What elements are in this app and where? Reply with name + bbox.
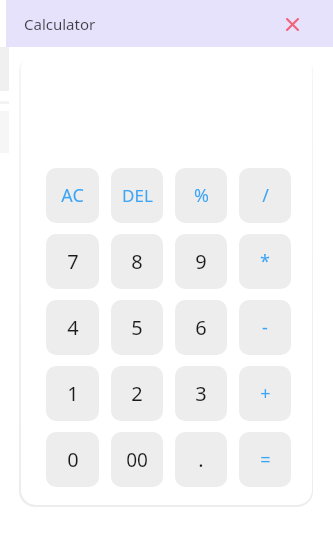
staticText: . (198, 446, 204, 473)
button[interactable]: . (175, 432, 227, 487)
staticText: = (260, 447, 271, 472)
button[interactable]: DEL (111, 168, 163, 223)
button[interactable]: 1 (46, 366, 99, 421)
button[interactable]: 6 (175, 300, 227, 355)
staticText: 00 (126, 447, 148, 473)
staticText: 2 (131, 380, 143, 407)
staticText: / (262, 183, 269, 208)
staticText: 1 (67, 380, 79, 407)
button[interactable]: * (239, 234, 291, 289)
button[interactable]: / (239, 168, 291, 223)
button[interactable]: = (239, 432, 291, 487)
button[interactable]: 0 (46, 432, 99, 487)
button[interactable]: 3 (175, 366, 227, 421)
button[interactable]: Close (281, 13, 303, 35)
staticText: 4 (67, 314, 79, 341)
button[interactable]: 8 (111, 234, 163, 289)
staticText: AC (61, 183, 84, 208)
staticText: DEL (122, 184, 153, 207)
staticText: * (260, 249, 270, 274)
staticText: - (262, 315, 268, 340)
button[interactable]: % (175, 168, 227, 223)
button[interactable]: 9 (175, 234, 227, 289)
button[interactable]: AC (46, 168, 99, 223)
staticText: 8 (131, 248, 143, 275)
button[interactable]: 7 (46, 234, 99, 289)
button[interactable]: 5 (111, 300, 163, 355)
button[interactable]: - (239, 300, 291, 355)
staticText: 9 (195, 248, 207, 275)
staticText: 7 (67, 248, 79, 275)
staticText: 5 (131, 314, 143, 341)
button[interactable]: 00 (111, 432, 163, 487)
button[interactable]: + (239, 366, 291, 421)
staticText: % (194, 183, 209, 208)
staticText: 3 (195, 380, 207, 407)
staticText: + (260, 381, 271, 406)
button[interactable]: 4 (46, 300, 99, 355)
staticText: 6 (195, 314, 207, 341)
staticText: Calculator (24, 14, 96, 34)
staticText: 0 (67, 446, 79, 473)
button[interactable]: 2 (111, 366, 163, 421)
